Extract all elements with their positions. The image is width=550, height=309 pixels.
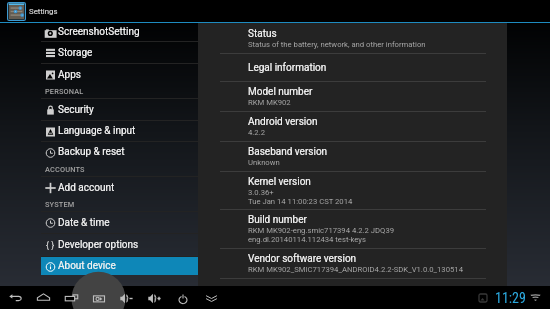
button[interactable]: Volume up [141,287,169,309]
button[interactable]: Volume down [113,287,141,309]
staticText: Status [248,28,277,40]
staticText: Add account [58,182,115,194]
staticText: RKM MK902-eng.smic717394 4.2.2 JDQ39 [248,226,395,235]
button[interactable]: Date & time [41,212,198,233]
staticText: { } [46,240,55,251]
staticText: Storage [58,47,93,59]
button[interactable]: ScreenshotSetting [41,23,198,41]
button[interactable]: Apps [41,64,198,85]
staticText: ACCOUNTS [45,165,85,174]
staticText: Tue Jan 14 11:00:23 CST 2014 [248,197,353,206]
staticText: RKM MK902 [248,98,291,107]
staticText: Model number [248,86,313,98]
staticText: 4.2.2 [248,128,266,137]
button[interactable]: Vendor software version [198,249,507,278]
button[interactable]: Hide navigation bar [197,287,225,309]
staticText: Build number [248,214,307,226]
staticText: Android version [248,116,318,128]
button[interactable]: Backup & reset [41,142,198,162]
button[interactable]: Kernel version [198,172,507,209]
staticText: 3.0.36+ [248,188,274,197]
button[interactable]: Home [29,287,57,309]
staticText: Apps [58,69,81,81]
staticText: Settings [29,7,58,16]
button[interactable]: Storage [41,42,198,63]
button[interactable]: Android version [198,112,507,141]
staticText: Baseband version [248,146,328,158]
staticText: 11:29 [495,290,526,306]
staticText: PERSONAL [45,87,84,96]
button[interactable]: Power [169,287,197,309]
staticText: Legal information [248,62,327,74]
staticText: Vendor software version [248,253,357,265]
staticText: ScreenshotSetting [58,26,140,38]
button[interactable]: Model number [198,82,507,111]
button[interactable]: Status [198,23,507,53]
staticText: SYSTEM [45,200,75,209]
staticText: Security [58,104,94,116]
button[interactable]: Settings [6,1,26,21]
staticText: Developer options [58,239,139,251]
button[interactable]: Language & input [41,121,198,141]
staticText: eng.dl.20140114.112434 test-keys [248,235,366,244]
button[interactable]: Legal information [198,54,507,81]
staticText: Status of the battery, network, and othe… [248,40,426,49]
staticText: About device [58,260,116,272]
button[interactable]: Build number [198,210,507,248]
button[interactable]: Baseband version [198,142,507,171]
button[interactable]: Security [41,99,198,120]
button[interactable]: Screenshot [85,287,113,309]
staticText: Language & input [58,125,136,137]
button[interactable]: Recent apps [57,287,85,309]
staticText: Date & time [58,217,110,229]
button[interactable]: Back [1,287,29,309]
staticText: RKM MK902_SMIC717394_ANDROID4.2.2-SDK_V1… [248,265,463,274]
staticText: Kernel version [248,176,311,188]
button[interactable]: { } [41,234,198,256]
staticText: Backup & reset [58,146,125,158]
button[interactable]: Add account [41,177,198,198]
button[interactable]: About device [41,257,198,275]
staticText: Unknown [248,158,280,167]
